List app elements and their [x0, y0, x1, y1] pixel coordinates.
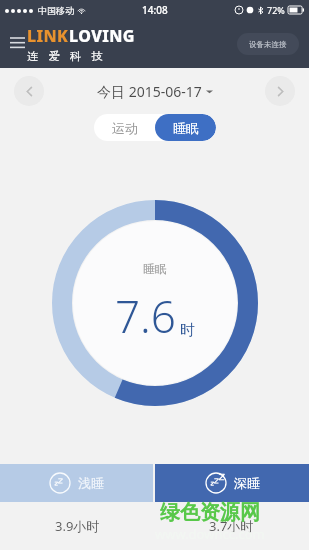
staticText: 3.7小时: [209, 517, 254, 535]
staticText: 时: [180, 321, 195, 340]
staticText: 绿色资源网: [160, 500, 260, 525]
button[interactable]: Light sleep: [0, 464, 153, 502]
button[interactable]: Deep sleep: [155, 464, 309, 502]
button[interactable]: Menu: [4, 31, 30, 57]
button[interactable]: 设备未连接: [237, 33, 299, 55]
staticText: 设备未连接: [249, 40, 287, 49]
staticText: 睡眠: [173, 120, 199, 136]
staticText: 深睡: [234, 475, 260, 491]
staticText: LOVING: [69, 25, 135, 47]
staticText: 浅睡: [78, 475, 104, 491]
staticText: 今日 2015-06-17: [97, 82, 202, 101]
staticText: 14:08: [142, 3, 168, 17]
button[interactable]: 今日 2015-06-17: [97, 82, 213, 101]
staticText: 睡眠: [143, 261, 167, 276]
button[interactable]: 睡眠: [155, 114, 216, 141]
staticText: www.downcc.com: [155, 525, 265, 543]
button[interactable]: Next day: [265, 76, 295, 106]
button[interactable]: 运动: [94, 114, 155, 141]
staticText: LINK: [27, 25, 69, 47]
staticText: 7.6: [115, 286, 176, 346]
staticText: 中国移动: [38, 5, 74, 16]
staticText: 72%: [267, 4, 285, 16]
staticText: 3.9小时: [55, 517, 100, 535]
staticText: 运动: [112, 120, 138, 136]
button[interactable]: Previous day: [14, 76, 44, 106]
staticText: 连 爱 科 技: [27, 48, 105, 63]
